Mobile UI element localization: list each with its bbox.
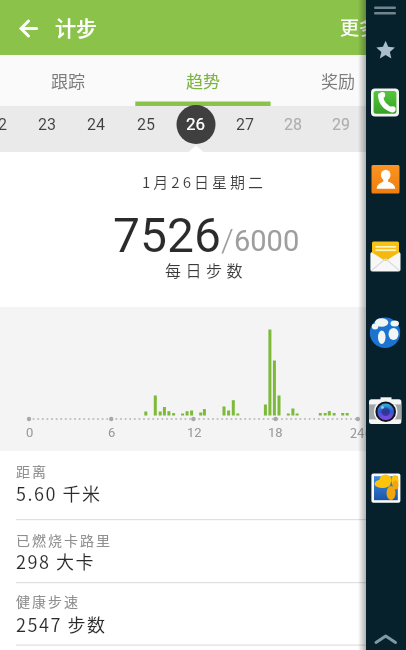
staticText: 18 (268, 425, 283, 440)
staticText: 1月26日星期二 (142, 171, 266, 193)
staticText: 27 (236, 115, 254, 134)
staticText: 0 (26, 425, 34, 440)
staticText: 29 (332, 115, 350, 134)
button[interactable] (221, 106, 269, 152)
button[interactable] (135, 55, 270, 106)
button[interactable] (366, 238, 406, 275)
staticText: 更多 (340, 13, 379, 41)
staticText: 298 大卡 (16, 548, 96, 574)
staticText: 24 (87, 115, 105, 134)
staticText: 距离 (16, 461, 48, 481)
staticText: 健康步速 (16, 591, 80, 611)
button[interactable] (366, 625, 406, 650)
staticText: 23 (38, 115, 56, 134)
button[interactable] (271, 55, 406, 106)
staticText: 5.60 千米 (16, 480, 102, 506)
staticText: 每日步数 (165, 258, 248, 281)
staticText: 24(时) (350, 423, 387, 442)
staticText: 12 (187, 425, 202, 440)
staticText: 6000 (234, 224, 300, 258)
staticText: 6 (108, 425, 116, 440)
button[interactable] (317, 106, 365, 152)
staticText: / (221, 221, 234, 259)
button[interactable] (366, 161, 406, 198)
staticText: 22 (0, 115, 7, 134)
staticText: 跟踪 (51, 68, 85, 93)
button[interactable] (23, 106, 71, 152)
button[interactable] (366, 470, 406, 507)
button[interactable] (0, 0, 55, 55)
staticText: 已燃烧卡路里 (16, 530, 112, 550)
button[interactable] (72, 106, 120, 152)
staticText: 28 (284, 115, 302, 134)
button[interactable] (269, 106, 317, 152)
staticText: 趋势 (186, 68, 220, 93)
staticText: 奖励 (321, 68, 355, 93)
button[interactable] (325, 0, 406, 55)
staticText: 25 (137, 115, 155, 134)
staticText: 7526 (113, 207, 221, 263)
button[interactable] (366, 84, 406, 121)
button[interactable] (122, 106, 170, 152)
staticText: 计步 (55, 12, 97, 42)
staticText: 2547 步数 (16, 611, 107, 637)
button[interactable] (172, 106, 220, 152)
staticText: 26 (186, 114, 206, 134)
button[interactable] (366, 314, 406, 351)
button[interactable] (366, 32, 406, 69)
button[interactable] (366, 393, 406, 430)
button[interactable] (0, 55, 135, 106)
